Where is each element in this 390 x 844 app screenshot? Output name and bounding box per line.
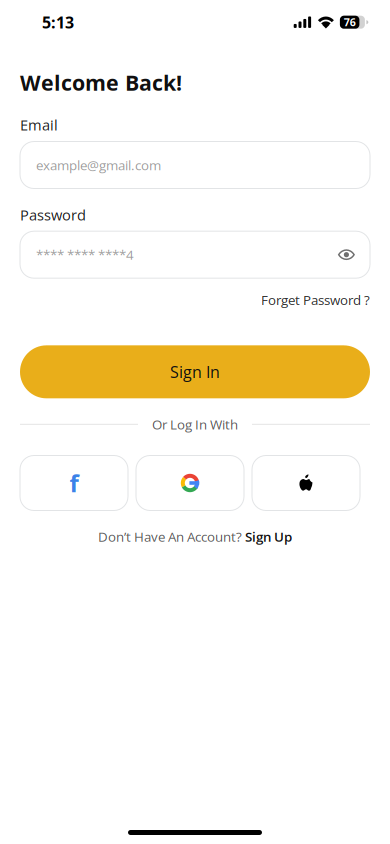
staticText: Or Log In With — [152, 415, 238, 433]
button[interactable]: Forget Password ? — [261, 291, 370, 309]
staticText: Password — [20, 205, 86, 225]
staticText: 5:13 — [42, 11, 74, 33]
staticText: example@gmail.com — [36, 156, 161, 174]
staticText: 76 — [344, 15, 356, 29]
button[interactable]: Log in with Apple — [252, 455, 360, 510]
staticText: **** **** ****4 — [36, 246, 134, 264]
staticText: Sign In — [170, 361, 220, 383]
button[interactable]: Sign Up — [245, 527, 292, 546]
staticText: Welcome Back! — [20, 68, 182, 97]
button[interactable]: Sign In — [20, 345, 370, 398]
staticText: Forget Password ? — [261, 291, 370, 309]
staticText: f — [69, 467, 78, 499]
staticText: Email — [20, 115, 58, 135]
button[interactable]: Log in with Facebook — [20, 455, 128, 510]
button[interactable]: Log in with Google — [136, 455, 244, 510]
staticText: Sign Up — [245, 527, 292, 546]
staticText: Don’t Have An Account? — [98, 527, 245, 546]
